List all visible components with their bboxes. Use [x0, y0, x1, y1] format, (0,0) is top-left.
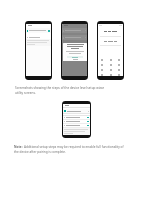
button[interactable] — [64, 120, 89, 123]
button[interactable] — [104, 41, 117, 42]
button[interactable] — [64, 124, 89, 127]
staticText: Additional setup steps may be required t… — [24, 145, 124, 149]
button[interactable] — [63, 28, 86, 33]
button[interactable] — [67, 56, 83, 58]
staticText: Screenshots showing the steps of the dev… — [15, 86, 104, 90]
button[interactable] — [27, 36, 50, 39]
button[interactable] — [64, 109, 89, 113]
button[interactable] — [27, 28, 50, 33]
button[interactable] — [63, 35, 86, 40]
staticText: utility screens. — [15, 91, 36, 95]
button[interactable] — [64, 116, 89, 119]
staticText: Note: — [14, 145, 24, 149]
staticText: the device after pairing is complete. — [14, 150, 66, 154]
